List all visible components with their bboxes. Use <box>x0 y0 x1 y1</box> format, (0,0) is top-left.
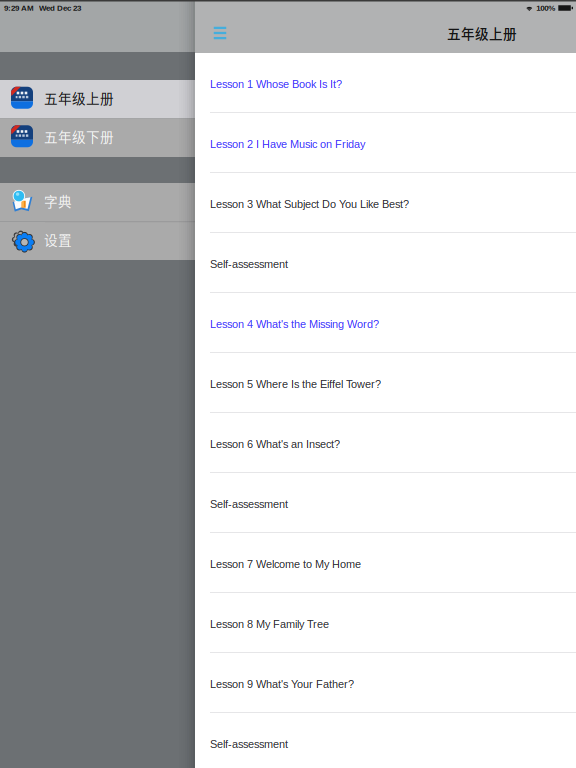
staticText: 五年级上册 <box>44 88 114 108</box>
staticText: 100% <box>536 3 555 12</box>
staticText: 字典 <box>44 191 72 211</box>
staticText: Lesson 1 Whose Book Is It? <box>210 78 342 90</box>
staticText: Lesson 4 What's the Missing Word? <box>210 318 379 330</box>
staticText: Lesson 8 My Family Tree <box>210 618 329 630</box>
button[interactable]: 字典 <box>0 183 195 221</box>
staticText: Lesson 7 Welcome to My Home <box>210 558 361 570</box>
staticText: Self-assessment <box>210 258 288 270</box>
staticText: Lesson 9 What's Your Father? <box>210 678 354 690</box>
button[interactable]: 五年级下册 <box>0 118 195 157</box>
button[interactable]: 五年级上册 <box>0 80 195 118</box>
staticText: Lesson 3 What Subject Do You Like Best? <box>210 198 409 210</box>
staticText: 五年级上册 <box>447 23 517 43</box>
staticText: 五年级下册 <box>44 126 114 146</box>
staticText: Self-assessment <box>210 498 288 510</box>
button[interactable]: Lesson 7 Welcome to My Home <box>195 533 576 593</box>
button[interactable]: Show sidebar <box>195 16 245 50</box>
button[interactable]: Lesson 1 Whose Book Is It? <box>195 53 576 113</box>
staticText: Lesson 6 What's an Insect? <box>210 438 340 450</box>
staticText: Lesson 5 Where Is the Eiffel Tower? <box>210 378 381 390</box>
staticText: Wed Dec 23 <box>39 3 81 12</box>
button[interactable]: Lesson 4 What's the Missing Word? <box>195 293 576 353</box>
button[interactable]: Lesson 6 What's an Insect? <box>195 413 576 473</box>
button[interactable]: Lesson 5 Where Is the Eiffel Tower? <box>195 353 576 413</box>
button[interactable]: Lesson 9 What's Your Father? <box>195 653 576 713</box>
staticText: Lesson 2 I Have Music on Friday <box>210 138 365 150</box>
button[interactable]: Lesson 8 My Family Tree <box>195 593 576 653</box>
button[interactable]: Self-assessment <box>195 473 576 533</box>
staticText: 设置 <box>44 229 72 249</box>
button[interactable]: Self-assessment <box>195 233 576 293</box>
button[interactable]: Lesson 2 I Have Music on Friday <box>195 113 576 173</box>
staticText: Self-assessment <box>210 738 288 750</box>
button[interactable]: Lesson 3 What Subject Do You Like Best? <box>195 173 576 233</box>
staticText: 9:29 AM <box>4 3 34 12</box>
button[interactable]: 设置 <box>0 221 195 260</box>
button[interactable]: Self-assessment <box>195 713 576 768</box>
